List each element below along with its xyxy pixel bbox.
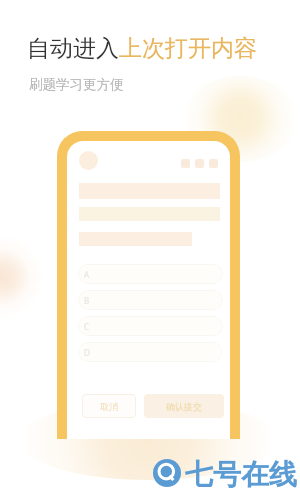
- staticText: 确认提交: [166, 401, 202, 412]
- staticText: B: [84, 295, 90, 306]
- staticText: 上次打开内容: [119, 34, 257, 63]
- button[interactable]: B: [78, 290, 223, 310]
- button[interactable]: A: [78, 264, 223, 284]
- button[interactable]: D: [78, 342, 223, 362]
- other: 七号在线 logo: [153, 459, 181, 487]
- staticText: 七号在线: [185, 457, 297, 492]
- button[interactable]: 取消: [82, 394, 136, 418]
- staticText: 自动进入: [27, 34, 119, 63]
- button[interactable]: C: [78, 316, 223, 336]
- staticText: 刷题学习更方便: [29, 76, 124, 93]
- staticText: A: [84, 269, 90, 280]
- staticText: D: [84, 347, 90, 358]
- staticText: 取消: [100, 401, 118, 412]
- button[interactable]: 确认提交: [144, 394, 224, 418]
- staticText: C: [84, 321, 90, 332]
